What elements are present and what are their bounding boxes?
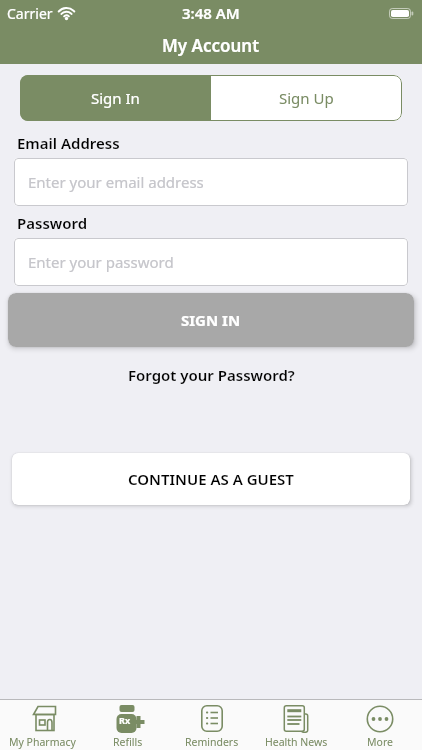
staticText: SIGN IN xyxy=(181,310,241,330)
button[interactable]: Sign In xyxy=(20,75,211,121)
staticText: Carrier xyxy=(7,4,53,23)
staticText: Password xyxy=(17,213,88,233)
staticText: Refills xyxy=(113,735,143,749)
staticText: Enter your email address xyxy=(28,172,204,192)
staticText: Enter your password xyxy=(28,252,174,272)
button[interactable]: My Pharmacy xyxy=(0,700,85,750)
staticText: More xyxy=(367,735,393,749)
button[interactable]: Sign Up xyxy=(211,75,402,121)
staticText: 3:48 AM xyxy=(182,3,240,23)
button[interactable]: Enter your password xyxy=(14,238,408,286)
staticText: Rx xyxy=(119,714,131,726)
button[interactable]: Forgot your Password? xyxy=(128,365,295,385)
staticText: My Pharmacy xyxy=(9,735,76,749)
button[interactable]: CONTINUE AS A GUEST xyxy=(12,453,410,505)
button[interactable]: Health News xyxy=(254,700,338,750)
button[interactable]: Enter your email address xyxy=(14,158,408,206)
staticText: My Account xyxy=(162,34,260,57)
staticText: CONTINUE AS A GUEST xyxy=(128,469,294,489)
staticText: Sign Up xyxy=(279,88,334,108)
button[interactable]: More xyxy=(338,700,422,750)
staticText: Forgot your Password? xyxy=(128,365,295,385)
button[interactable]: Rx xyxy=(85,700,170,750)
button[interactable]: Reminders xyxy=(170,700,254,750)
staticText: Email Address xyxy=(17,133,120,153)
staticText: Sign In xyxy=(91,88,140,108)
staticText: Reminders xyxy=(185,735,239,749)
staticText: Health News xyxy=(265,735,328,749)
button[interactable]: SIGN IN xyxy=(8,293,414,347)
